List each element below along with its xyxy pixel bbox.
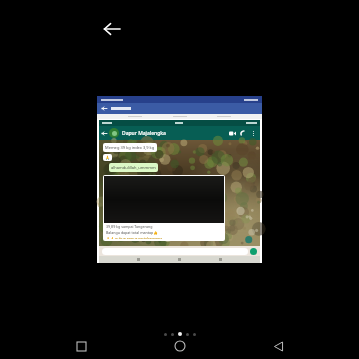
button[interactable]: alhamdulillah_ummmm	[109, 163, 158, 172]
staticText: Balangu dapat total mantap👍	[106, 230, 158, 235]
staticText: 🙏	[105, 155, 110, 160]
button[interactable]: Recent apps	[64, 333, 98, 359]
button[interactable]: Dapur Majalengka	[99, 126, 260, 140]
button[interactable]: Send voice message	[250, 248, 257, 255]
button[interactable]: 39,89 kg sampai Tangerang	[103, 175, 225, 241]
staticText: Dapur Majalengka	[122, 130, 166, 137]
button[interactable]: More options	[250, 130, 257, 137]
staticText: Memeg 39 kg index 3,9 kg	[105, 145, 155, 150]
button[interactable]	[97, 103, 262, 114]
button[interactable]: Back	[95, 12, 129, 46]
staticText: alhamdulillah_ummmm	[111, 165, 156, 170]
button[interactable]: Home	[163, 333, 197, 359]
button[interactable]: Video call	[228, 129, 237, 138]
button[interactable]: Dapur Majalengka	[97, 96, 262, 263]
staticText: 39,89 kg sampai Tangerang	[106, 224, 153, 229]
button[interactable]: 🙏	[103, 154, 112, 161]
staticText: 🙏🙏 nuhun semua pertolonganna	[106, 236, 163, 239]
button[interactable]: Back	[261, 333, 295, 359]
button[interactable]: Call	[239, 129, 248, 138]
button[interactable]: Memeg 39 kg index 3,9 kg	[103, 143, 157, 152]
